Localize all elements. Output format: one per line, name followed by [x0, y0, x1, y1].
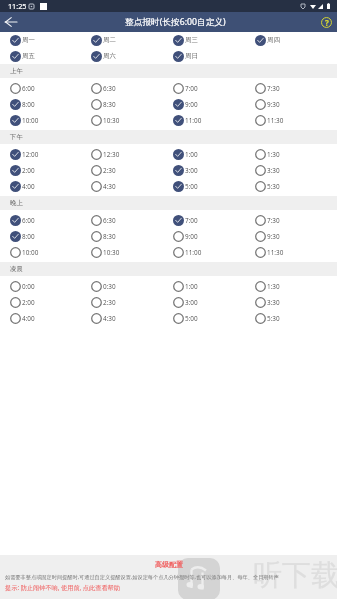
button[interactable]: 8:30 [91, 96, 173, 112]
button[interactable]: 10:30 [91, 244, 173, 260]
button[interactable]: 11:00 [173, 112, 255, 128]
button[interactable]: 9:30 [255, 96, 337, 112]
button[interactable]: 4:30 [91, 178, 173, 194]
staticText: 9:00 [185, 232, 198, 241]
staticText: 2:30 [103, 298, 116, 307]
button[interactable]: 7:30 [255, 212, 337, 228]
button[interactable]: 3:00 [173, 294, 255, 310]
staticText: 高级配置 [155, 560, 183, 569]
button[interactable]: 9:30 [255, 228, 337, 244]
staticText: 2:00 [22, 298, 35, 307]
staticText: 9:30 [267, 100, 280, 109]
button[interactable]: 7:00 [173, 212, 255, 228]
button[interactable]: 0:00 [10, 278, 91, 294]
button[interactable]: 周二 [91, 32, 173, 48]
button[interactable]: 12:30 [91, 146, 173, 162]
button[interactable]: 6:30 [91, 212, 173, 228]
staticText: 周六 [103, 52, 116, 60]
button[interactable]: 1:30 [255, 146, 337, 162]
staticText: 周一 [22, 36, 35, 44]
staticText: 10:00 [22, 248, 39, 257]
button[interactable]: 10:30 [91, 112, 173, 128]
staticText: 1:30 [267, 150, 280, 159]
staticText: 周五 [22, 52, 35, 60]
button[interactable]: Back [0, 12, 22, 32]
button[interactable]: 3:30 [255, 294, 337, 310]
staticText: 11:25 [8, 1, 27, 11]
button[interactable]: 7:30 [255, 80, 337, 96]
staticText: 12:30 [103, 150, 120, 159]
staticText: 周四 [267, 36, 280, 44]
button[interactable]: 周三 [173, 32, 255, 48]
button[interactable]: 7:00 [173, 80, 255, 96]
staticText: 3:00 [185, 166, 198, 175]
staticText: 晚上 [10, 199, 23, 207]
button[interactable]: 4:00 [10, 178, 91, 194]
button[interactable]: 周四 [255, 32, 337, 48]
button[interactable]: 周六 [91, 48, 173, 64]
staticText: 0:30 [103, 282, 116, 291]
button[interactable]: 5:30 [255, 178, 337, 194]
button[interactable]: 8:00 [10, 96, 91, 112]
staticText: 7:30 [267, 216, 280, 225]
button[interactable]: 2:00 [10, 162, 91, 178]
button[interactable]: 3:30 [255, 162, 337, 178]
staticText: 2:30 [103, 166, 116, 175]
button[interactable]: 9:00 [173, 228, 255, 244]
staticText: 4:30 [103, 314, 116, 323]
staticText: 5:30 [267, 182, 280, 191]
button[interactable]: 8:30 [91, 228, 173, 244]
button[interactable]: 周五 [10, 48, 91, 64]
button[interactable]: 提示: 防止闹钟不响, 使用前, 点此查看帮助 [5, 583, 120, 591]
staticText: 6:00 [22, 84, 35, 93]
button[interactable]: 1:00 [173, 146, 255, 162]
button[interactable]: 1:30 [255, 278, 337, 294]
button[interactable]: 周日 [173, 48, 255, 64]
staticText: 周日 [185, 52, 198, 60]
button[interactable]: 6:00 [10, 80, 91, 96]
staticText: 4:00 [22, 314, 35, 323]
button[interactable]: 8:00 [10, 228, 91, 244]
staticText: 10:30 [103, 116, 120, 125]
button[interactable]: 10:00 [10, 244, 91, 260]
button[interactable]: 2:00 [10, 294, 91, 310]
button[interactable]: 3:00 [173, 162, 255, 178]
button[interactable]: 2:30 [91, 162, 173, 178]
button[interactable]: 2:30 [91, 294, 173, 310]
staticText: 11:00 [185, 248, 202, 257]
button[interactable]: Help [321, 17, 332, 28]
button[interactable]: 4:00 [10, 310, 91, 326]
button[interactable]: 11:30 [255, 244, 337, 260]
staticText: 0:00 [22, 282, 35, 291]
button[interactable]: 5:00 [173, 310, 255, 326]
button[interactable]: 0:30 [91, 278, 173, 294]
staticText: 8:30 [103, 100, 116, 109]
staticText: 4:30 [103, 182, 116, 191]
staticText: 7:00 [185, 84, 198, 93]
staticText: 8:30 [103, 232, 116, 241]
staticText: 10:30 [103, 248, 120, 257]
button[interactable]: 11:00 [173, 244, 255, 260]
button[interactable]: 1:00 [173, 278, 255, 294]
staticText: ? [325, 17, 329, 28]
staticText: 1:00 [185, 150, 198, 159]
staticText: 4:00 [22, 182, 35, 191]
button[interactable]: 6:30 [91, 80, 173, 96]
staticText: 7:00 [185, 216, 198, 225]
staticText: 11:00 [185, 116, 202, 125]
button[interactable]: 4:30 [91, 310, 173, 326]
button[interactable]: 10:00 [10, 112, 91, 128]
staticText: 9:00 [185, 100, 198, 109]
staticText: 11:30 [267, 248, 284, 257]
button[interactable]: 5:00 [173, 178, 255, 194]
button[interactable]: 6:00 [10, 212, 91, 228]
staticText: 3:30 [267, 166, 280, 175]
staticText: 周二 [103, 36, 116, 44]
button[interactable]: 12:00 [10, 146, 91, 162]
button[interactable]: 5:30 [255, 310, 337, 326]
button[interactable]: 周一 [10, 32, 91, 48]
staticText: 1:00 [185, 282, 198, 291]
staticText: 9:30 [267, 232, 280, 241]
button[interactable]: 9:00 [173, 96, 255, 112]
button[interactable]: 11:30 [255, 112, 337, 128]
